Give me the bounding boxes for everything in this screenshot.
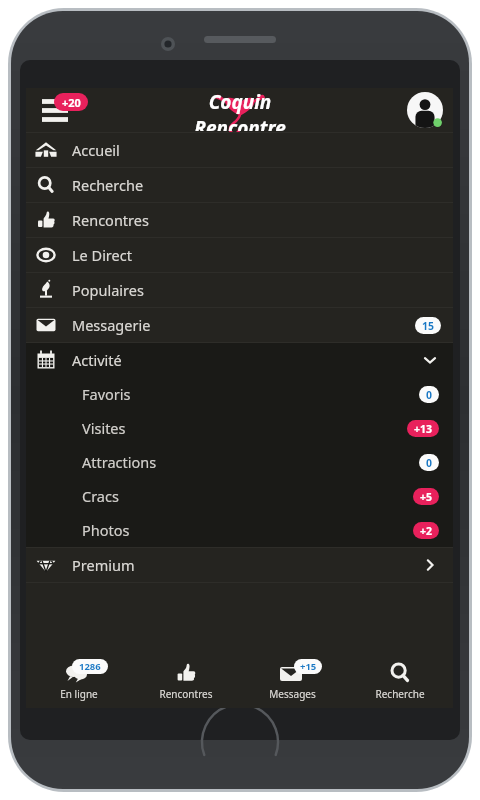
staticText: 0 (426, 388, 433, 402)
staticText: +13 (414, 422, 433, 436)
staticText: +15 (300, 660, 317, 673)
staticText: Recherche (72, 175, 144, 195)
staticText: Photos (82, 520, 130, 540)
button[interactable]: Rencontres (132, 655, 239, 705)
button[interactable]: Photos (26, 513, 453, 547)
staticText: Attractions (82, 452, 157, 472)
staticText: Messagerie (72, 315, 151, 335)
button[interactable]: Attractions (26, 445, 453, 479)
staticText: En ligne (60, 687, 98, 701)
button[interactable]: Activité (26, 343, 453, 377)
staticText: 15 (422, 319, 435, 333)
button[interactable]: Premium (26, 548, 453, 582)
staticText: +2 (420, 524, 433, 538)
staticText: Rencontres (159, 687, 213, 701)
staticText: Populaires (72, 280, 144, 300)
staticText: +20 (62, 95, 81, 110)
staticText: 0 (426, 456, 433, 470)
button[interactable]: Cracs (26, 479, 453, 513)
staticText: Cracs (82, 486, 119, 506)
staticText: Le Direct (72, 245, 132, 265)
staticText: Coquin Rencontre (165, 89, 315, 131)
button[interactable]: Recherche (346, 655, 453, 705)
staticText: Visites (82, 418, 126, 438)
button[interactable]: Rencontres (26, 203, 453, 237)
button[interactable]: Accueil (26, 133, 453, 167)
staticText: Activité (72, 350, 122, 370)
staticText: 1286 (79, 660, 101, 673)
button[interactable]: +15 (239, 655, 346, 705)
button[interactable]: Menu, 20 notifications (36, 93, 94, 127)
button[interactable]: Le Direct (26, 238, 453, 272)
button[interactable]: Profile (405, 90, 445, 130)
button[interactable]: Populaires (26, 273, 453, 307)
button[interactable]: 1286 (26, 655, 132, 705)
button[interactable]: Recherche (26, 168, 453, 202)
button[interactable]: Messagerie (26, 308, 453, 342)
staticText: Favoris (82, 384, 131, 404)
button[interactable]: Visites (26, 411, 453, 445)
staticText: Premium (72, 555, 135, 575)
staticText: Recherche (375, 687, 425, 701)
staticText: Rencontres (72, 210, 149, 230)
staticText: Messages (269, 687, 316, 701)
staticText: Accueil (72, 140, 120, 160)
button[interactable]: Favoris (26, 377, 453, 411)
staticText: +5 (420, 490, 433, 504)
